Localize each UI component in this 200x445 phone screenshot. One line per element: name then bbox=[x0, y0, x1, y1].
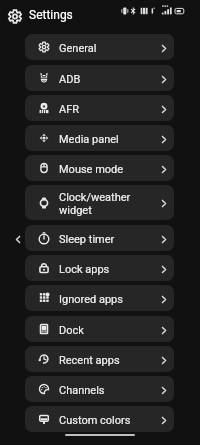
button[interactable]: Recent apps bbox=[25, 346, 174, 372]
staticText: Sleep timer bbox=[59, 233, 115, 246]
button[interactable]: Custom colors bbox=[25, 406, 174, 432]
staticText: Channels bbox=[59, 384, 105, 397]
staticText: General bbox=[59, 42, 97, 55]
staticText: Settings bbox=[29, 8, 73, 22]
staticText: Ignored apps bbox=[59, 293, 123, 306]
staticText: Recent apps bbox=[59, 354, 120, 367]
staticText: Lock apps bbox=[59, 263, 110, 276]
button[interactable]: Ignored apps bbox=[25, 285, 174, 311]
button[interactable]: Channels bbox=[25, 376, 174, 402]
other: Back bbox=[16, 236, 20, 243]
button[interactable]: Sleep timer bbox=[25, 225, 174, 251]
button[interactable]: General bbox=[25, 34, 174, 60]
staticText: Custom colors bbox=[59, 414, 131, 427]
staticText: AFR bbox=[59, 103, 80, 116]
button[interactable]: Dock bbox=[25, 316, 174, 342]
button[interactable]: ADB bbox=[25, 65, 174, 91]
staticText: Mouse mode bbox=[59, 163, 124, 176]
button[interactable]: AFR bbox=[25, 95, 174, 121]
staticText: ADB bbox=[59, 73, 81, 86]
button[interactable]: Media panel bbox=[25, 125, 174, 151]
button[interactable]: Lock apps bbox=[25, 255, 174, 281]
staticText: Media panel bbox=[59, 133, 119, 146]
staticText: Clock/weather widget bbox=[59, 191, 131, 217]
button[interactable]: Mouse mode bbox=[25, 155, 174, 181]
staticText: Dock bbox=[59, 324, 84, 337]
button[interactable]: Clock/weather widget bbox=[25, 185, 174, 220]
